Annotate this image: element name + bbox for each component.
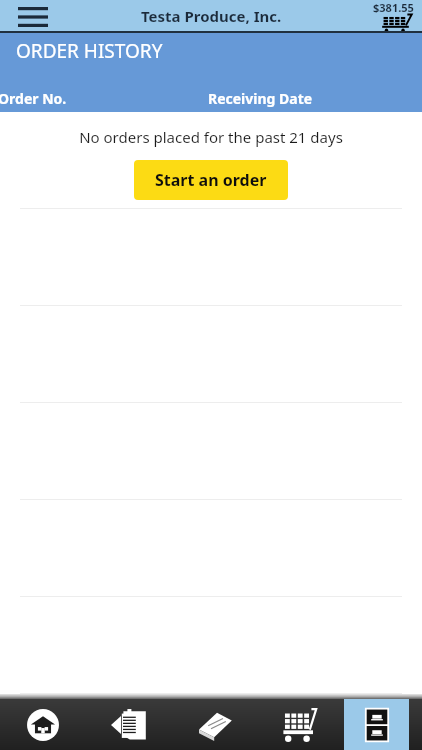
- button[interactable]: Menu: [14, 2, 52, 32]
- staticText: Order No.: [0, 89, 67, 108]
- button[interactable]: More: [409, 699, 422, 750]
- button[interactable]: Catalog: [172, 699, 258, 750]
- button[interactable]: Start an order: [134, 160, 288, 200]
- staticText: Start an order: [155, 169, 267, 191]
- button[interactable]: Cart: [258, 699, 344, 750]
- staticText: ORDER HISTORY: [16, 38, 163, 64]
- staticText: No orders placed for the past 21 days: [0, 127, 422, 147]
- button[interactable]: Cart, $381.55: [350, 0, 422, 33]
- staticText: Receiving Date: [208, 89, 313, 108]
- staticText: Testa Produce, Inc.: [141, 6, 282, 26]
- button[interactable]: Home: [0, 699, 86, 750]
- button[interactable]: Orders: [86, 699, 172, 750]
- staticText: $381.55: [373, 0, 414, 15]
- button[interactable]: Account: [344, 699, 409, 750]
